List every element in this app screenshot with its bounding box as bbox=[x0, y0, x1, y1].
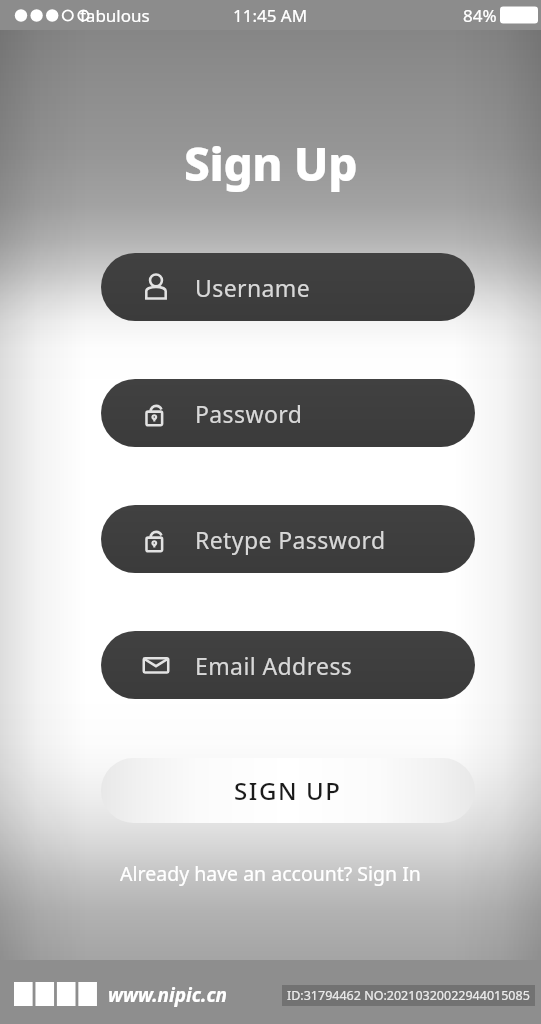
staticText: fabulous bbox=[80, 4, 150, 27]
button[interactable]: Password bbox=[101, 379, 475, 447]
staticText: ID:31794462 NO:20210320022944015085 bbox=[287, 987, 530, 1004]
staticText: Sign Up bbox=[184, 132, 358, 194]
staticText: Password bbox=[195, 398, 303, 429]
button[interactable]: Retype Password bbox=[101, 505, 475, 573]
staticText: 84% bbox=[463, 4, 497, 27]
staticText: Already have an account? Sign In bbox=[120, 860, 421, 887]
button[interactable]: Email Address bbox=[101, 631, 475, 699]
staticText: Retype Password bbox=[195, 524, 386, 555]
staticText: Email Address bbox=[195, 650, 353, 681]
staticText: 11:45 AM bbox=[233, 4, 308, 27]
button[interactable]: Already have an account? Sign In bbox=[0, 855, 541, 891]
staticText: www.nipic.cn bbox=[108, 982, 228, 1008]
staticText: Username bbox=[195, 272, 311, 303]
button[interactable]: SIGN UP bbox=[101, 758, 475, 823]
button[interactable]: Username bbox=[101, 253, 475, 321]
staticText: SIGN UP bbox=[234, 774, 342, 807]
